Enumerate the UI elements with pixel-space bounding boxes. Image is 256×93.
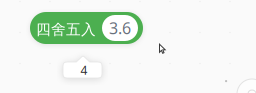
staticText: 4 [80,62,87,78]
staticText: 四舍五入 [36,20,96,38]
staticText: 3.6 [109,17,131,39]
button[interactable]: 四舍五入 [30,12,143,44]
button[interactable]: Zoom control [237,79,256,93]
button[interactable]: 4 [63,56,102,78]
